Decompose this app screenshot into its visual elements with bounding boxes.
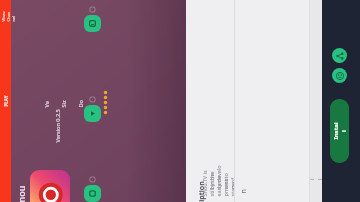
button[interactable]: App action [84,105,101,122]
staticText: by the same creators of Shou [207,171,242,189]
staticText: Size 20.94MB [59,99,66,107]
staticText: Version 0.2.5 [53,108,60,142]
button[interactable]: App action [84,15,101,32]
staticText: n [238,188,248,193]
staticText: Install [331,121,347,140]
staticText: ription [197,181,207,202]
button[interactable] [30,170,70,202]
staticText: PLAY [2,95,8,106]
button[interactable]: Favorite [332,68,347,83]
staticText: Ad Www.Channel [0,10,15,21]
staticText: Version 0.2.5 [42,99,49,107]
staticText: Downloaded (167868121) [76,99,83,107]
button[interactable]: Install [330,99,349,163]
button[interactable]: App action [84,185,101,202]
button[interactable]: Share [332,48,347,63]
staticText: Shou.TV is still in the early developmen… [200,164,235,196]
staticText: nou [14,185,26,202]
